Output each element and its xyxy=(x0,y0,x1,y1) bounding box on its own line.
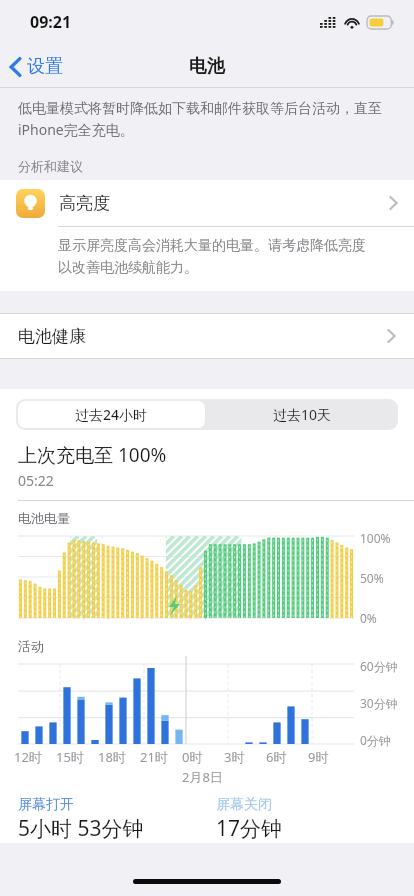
staticText: 6时 xyxy=(266,748,287,766)
staticText: 09:21 xyxy=(30,11,72,33)
staticText: 50% xyxy=(360,570,384,586)
button[interactable]: 电池健康 xyxy=(0,314,414,358)
staticText: 低电量模式将暂时降低如下载和邮件获取等后台活动，直至 iPhone完全充电。 xyxy=(18,100,382,140)
staticText: 9时 xyxy=(308,748,329,766)
staticText: 3时 xyxy=(224,748,245,766)
staticText: 15时 xyxy=(56,748,84,766)
staticText: 屏幕关闭 xyxy=(216,796,272,814)
staticText: 分析和建议 xyxy=(18,158,83,174)
staticText: 电池健康 xyxy=(18,326,86,347)
staticText: 上次充电至 100% xyxy=(18,442,167,468)
staticText: 0分钟 xyxy=(360,732,391,748)
staticText: 05:22 xyxy=(18,471,54,490)
button[interactable]: 设置 xyxy=(0,49,73,84)
staticText: 60分钟 xyxy=(360,658,398,674)
staticText: 设置 xyxy=(27,55,63,78)
staticText: 过去24小时 xyxy=(75,405,148,424)
staticText: 电池电量 xyxy=(18,510,70,526)
staticText: 5小时 53分钟 xyxy=(18,814,144,843)
button[interactable]: 过去10天 xyxy=(207,399,398,430)
staticText: 过去10天 xyxy=(273,405,332,424)
staticText: 100% xyxy=(360,530,391,546)
staticText: 显示屏亮度高会消耗大量的电量。请考虑降低亮度 以改善电池续航能力。 xyxy=(58,237,366,277)
staticText: 30分钟 xyxy=(360,695,398,711)
staticText: 18时 xyxy=(98,748,126,766)
staticText: 17分钟 xyxy=(216,814,283,843)
staticText: 21时 xyxy=(140,748,168,766)
staticText: 屏幕打开 xyxy=(18,796,74,814)
staticText: 2月8日 xyxy=(182,768,223,786)
staticText: 12时 xyxy=(14,748,42,766)
staticText: 0时 xyxy=(182,748,203,766)
staticText: 活动 xyxy=(18,638,44,654)
staticText: 电池 xyxy=(189,55,225,78)
button[interactable]: 过去24小时 xyxy=(18,401,205,428)
button[interactable]: 高亮度 xyxy=(0,180,414,226)
staticText: 0% xyxy=(360,610,377,626)
staticText: 高亮度 xyxy=(59,193,110,214)
